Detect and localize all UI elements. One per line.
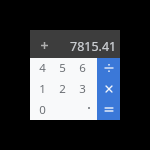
button[interactable]: 2 [52,78,72,99]
button[interactable]: 5 [52,58,72,78]
button[interactable]: Equals [97,99,120,120]
staticText: 6 [79,60,86,76]
button[interactable]: Decimal point [72,99,92,120]
button[interactable]: 3 [72,78,92,99]
button[interactable]: 1 [32,78,52,99]
button[interactable]: 0 [32,99,72,120]
staticText: 0 [39,102,46,118]
button[interactable]: 4 [32,58,52,78]
button[interactable]: Add [33,33,55,55]
staticText: 2 [59,81,66,97]
staticText: 5 [59,60,66,76]
staticText: 3 [79,81,86,97]
staticText: 1 [39,81,46,97]
button[interactable]: 6 [72,58,92,78]
staticText: 7815.41 [70,38,117,55]
button[interactable]: Divide [97,58,120,78]
button[interactable]: Multiply [97,78,120,99]
staticText: 4 [39,60,46,76]
